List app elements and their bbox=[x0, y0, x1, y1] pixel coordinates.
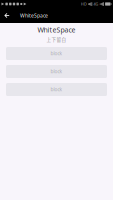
staticText: 4G bbox=[93, 1, 98, 7]
staticText: WhiteSpace bbox=[37, 25, 75, 34]
button[interactable]: Back bbox=[0, 8, 14, 23]
staticText: HD bbox=[81, 1, 87, 7]
staticText: block bbox=[50, 68, 62, 75]
button[interactable]: block bbox=[6, 65, 107, 78]
button[interactable]: block bbox=[6, 47, 107, 60]
staticText: block bbox=[50, 86, 62, 93]
staticText: WhiteSpace bbox=[20, 12, 48, 19]
button[interactable]: block bbox=[6, 83, 107, 96]
staticText: 上下留白 bbox=[46, 36, 66, 42]
staticText: block bbox=[50, 50, 62, 57]
